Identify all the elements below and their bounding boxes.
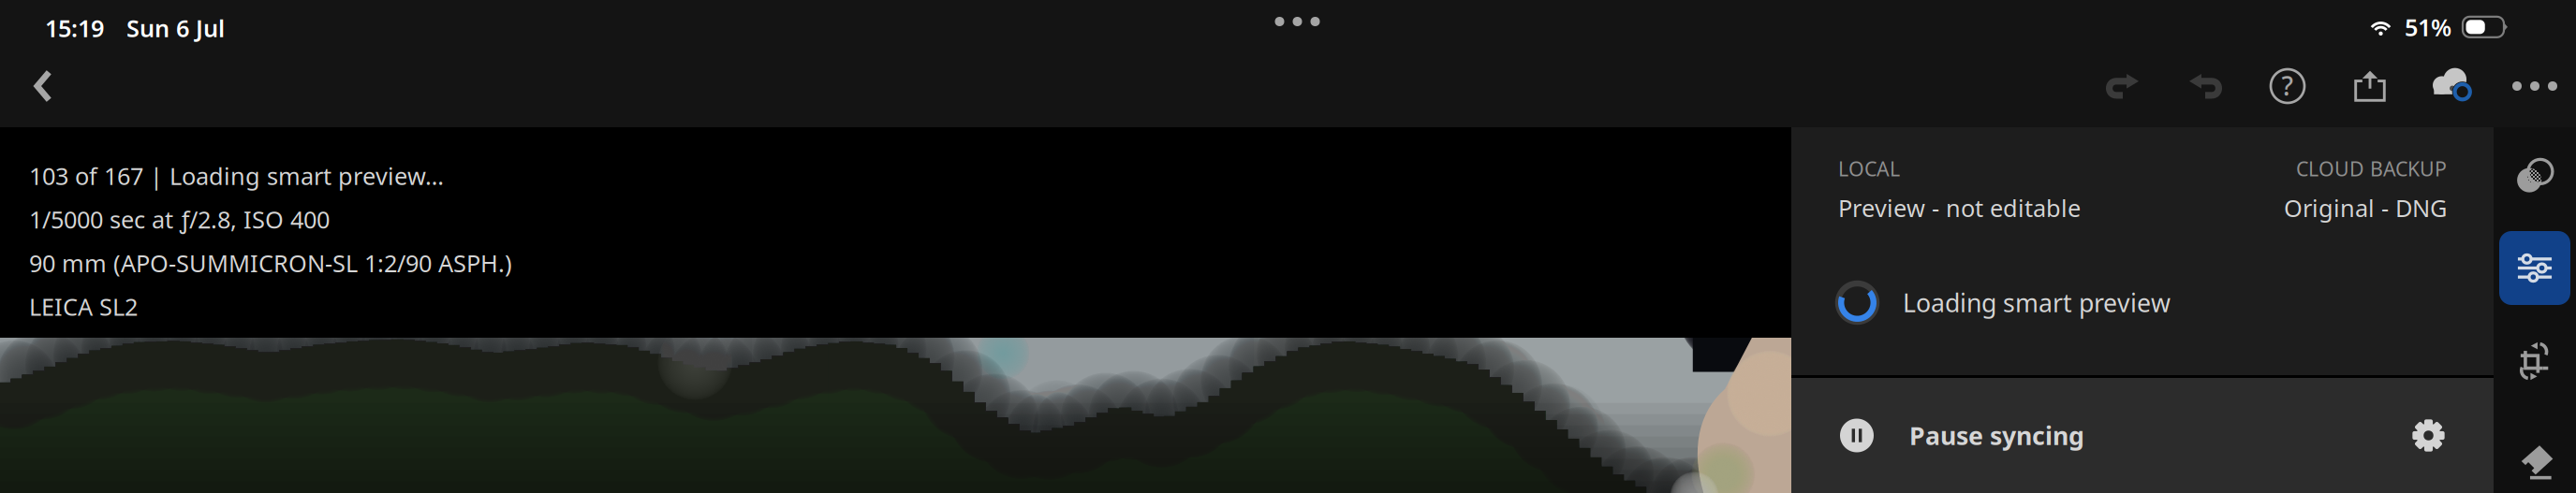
staticText: Original - DNG <box>2284 192 2447 223</box>
staticText: 90 mm (APO-SUMMICRON-SL 1:2/90 ASPH.) <box>29 247 512 279</box>
staticText: CLOUD BACKUP <box>2296 155 2447 182</box>
button[interactable]: Healing <box>2494 433 2576 489</box>
button[interactable]: Redo <box>2085 45 2160 127</box>
staticText: Pause syncing <box>1909 419 2084 452</box>
button[interactable]: Cloud sync status <box>2416 45 2491 127</box>
button[interactable]: Edit <box>2499 231 2570 305</box>
button[interactable]: Help <box>2250 45 2325 127</box>
staticText: Loading smart preview <box>1903 286 2171 319</box>
staticText: 1/5000 sec at ƒ/2.8, ISO 400 <box>29 204 330 235</box>
staticText: LOCAL <box>1838 155 1900 182</box>
staticText: Sun 6 Jul <box>126 12 225 44</box>
staticText: LEICA SL2 <box>29 291 138 322</box>
button[interactable]: Share <box>2333 45 2407 127</box>
button[interactable]: Masking <box>2494 148 2576 204</box>
staticText: 15:19 <box>45 12 104 44</box>
staticText: 103 of 167 | Loading smart preview… <box>29 160 444 191</box>
button[interactable]: Pause syncing <box>1791 378 2494 493</box>
staticText: ? <box>2282 68 2294 103</box>
button[interactable]: Undo <box>2168 45 2243 127</box>
button[interactable]: Back <box>9 45 77 127</box>
button[interactable]: More options <box>2497 45 2572 127</box>
staticText: 51% <box>2405 11 2451 43</box>
staticText: Preview - not editable <box>1838 192 2081 223</box>
button[interactable]: Crop <box>2494 333 2576 389</box>
